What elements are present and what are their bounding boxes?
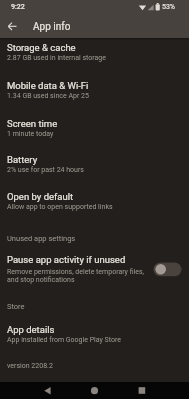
button[interactable]: Pause app activity if unused bbox=[0, 249, 189, 289]
staticText: and stop notifications bbox=[7, 276, 75, 284]
staticText: App installed from Google Play Store bbox=[7, 336, 121, 344]
staticText: Unused app settings bbox=[7, 234, 76, 243]
staticText: Mobile data & Wi-Fi bbox=[7, 80, 89, 91]
staticText: Allow app to open supported links bbox=[7, 203, 113, 211]
button[interactable]: Screen time bbox=[0, 113, 189, 141]
button[interactable] bbox=[79, 382, 110, 399]
button[interactable] bbox=[32, 382, 63, 399]
button[interactable] bbox=[4, 18, 21, 35]
staticText: 53% bbox=[162, 3, 175, 11]
staticText: Open by default bbox=[7, 191, 74, 202]
staticText: Pause app activity if unused bbox=[7, 254, 126, 265]
button[interactable]: Storage & cache bbox=[0, 37, 189, 65]
staticText: Storage & cache bbox=[7, 42, 76, 53]
staticText: Screen time bbox=[7, 118, 58, 129]
button[interactable]: Mobile data & Wi-Fi bbox=[0, 75, 189, 103]
staticText: App info bbox=[33, 21, 71, 33]
staticText: App details bbox=[7, 324, 55, 335]
staticText: 2% use for past 24 hours bbox=[7, 166, 84, 174]
staticText: Remove permissions, delete temporary fil… bbox=[7, 268, 144, 276]
button[interactable]: App details bbox=[0, 319, 189, 347]
button[interactable]: Battery bbox=[0, 149, 189, 177]
button[interactable] bbox=[126, 382, 157, 399]
staticText: Battery bbox=[7, 154, 38, 165]
staticText: Store bbox=[7, 302, 25, 311]
staticText: version 2208.2 bbox=[7, 362, 53, 370]
staticText: 9:22 bbox=[11, 3, 25, 11]
staticText: 2.87 GB used in internal storage bbox=[7, 54, 106, 62]
button[interactable]: Open by default bbox=[0, 186, 189, 214]
staticText: 1.34 GB used since Apr 25 bbox=[7, 92, 89, 100]
staticText: 1 minute today bbox=[7, 130, 54, 138]
